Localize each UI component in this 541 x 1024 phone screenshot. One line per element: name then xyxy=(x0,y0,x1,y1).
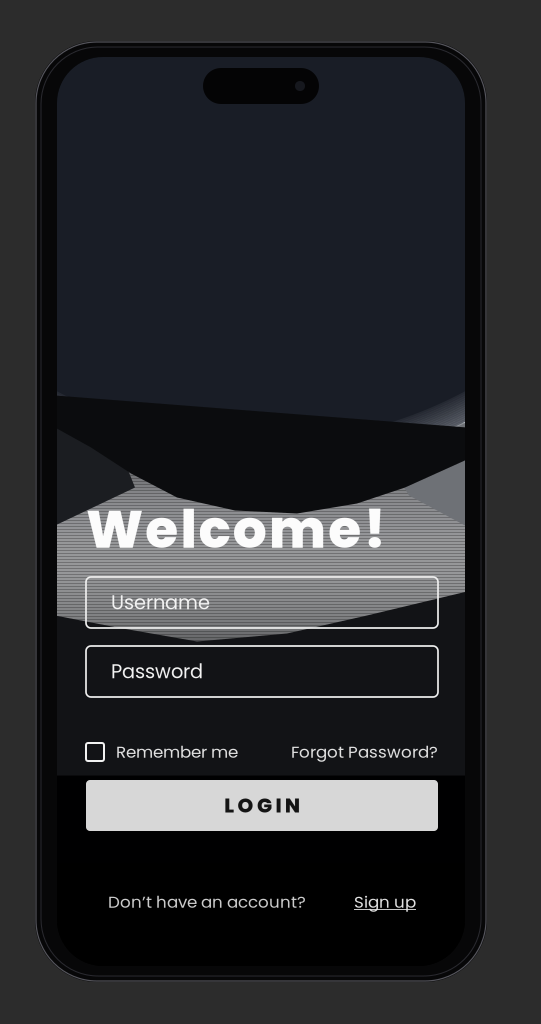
staticText: e xyxy=(328,492,361,566)
button[interactable]: Username xyxy=(86,577,438,628)
staticText: c xyxy=(199,492,231,566)
staticText: Remember me xyxy=(116,740,238,764)
staticText: Username xyxy=(111,589,210,616)
button[interactable]: Remember me xyxy=(86,739,238,765)
staticText: m xyxy=(269,492,326,566)
staticText: Don’t have an account? xyxy=(108,890,306,914)
staticText: Password xyxy=(111,658,203,685)
staticText: o xyxy=(233,492,267,566)
staticText: O xyxy=(238,791,254,819)
staticText: W xyxy=(86,492,143,566)
button[interactable]: Password xyxy=(86,646,438,697)
staticText: G xyxy=(257,791,272,819)
staticText: N xyxy=(285,791,300,819)
button[interactable]: L xyxy=(86,780,438,831)
staticText: ! xyxy=(363,492,386,566)
button[interactable]: Forgot Password? xyxy=(291,739,438,765)
staticText: I xyxy=(275,791,281,819)
staticText: e xyxy=(145,492,178,566)
staticText: L xyxy=(224,791,234,819)
staticText: Forgot Password? xyxy=(291,740,438,764)
staticText: Sign up xyxy=(354,890,416,914)
staticText: l xyxy=(180,492,196,566)
button[interactable]: Sign up xyxy=(354,890,416,914)
